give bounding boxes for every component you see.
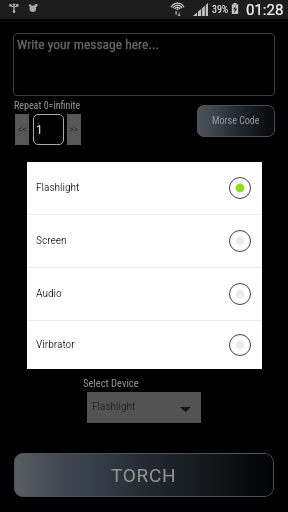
staticText: Repeat 0=infinite	[14, 100, 81, 112]
staticText: Screen	[36, 235, 67, 247]
staticText: TORCH	[111, 464, 177, 486]
button[interactable]: Virbrator	[27, 321, 262, 369]
button[interactable]: Flashlight	[87, 392, 201, 423]
staticText: 1	[36, 122, 43, 137]
staticText: Select Device	[83, 377, 139, 389]
staticText: 01:28	[246, 1, 284, 19]
button[interactable]: Increase repeat	[67, 114, 81, 145]
staticText: >>	[69, 124, 79, 136]
button[interactable]: 1	[33, 114, 64, 145]
staticText: Morse Code	[212, 115, 260, 127]
staticText: 39%	[212, 4, 229, 16]
staticText: Flashlight	[36, 182, 80, 194]
button[interactable]: TORCH	[14, 453, 274, 497]
staticText: Virbrator	[36, 339, 75, 351]
button[interactable]: Morse Code	[197, 105, 275, 137]
staticText: Write your message here...	[17, 36, 160, 52]
button[interactable]: Write your message here...	[13, 33, 275, 96]
staticText: Audio	[36, 288, 62, 300]
staticText: <<	[18, 124, 27, 136]
button[interactable]: Decrease repeat	[15, 114, 29, 145]
staticText: Flashlight	[92, 401, 136, 413]
button[interactable]: Audio	[27, 268, 262, 320]
button[interactable]: Screen	[27, 215, 262, 267]
button[interactable]: Flashlight	[27, 162, 262, 214]
